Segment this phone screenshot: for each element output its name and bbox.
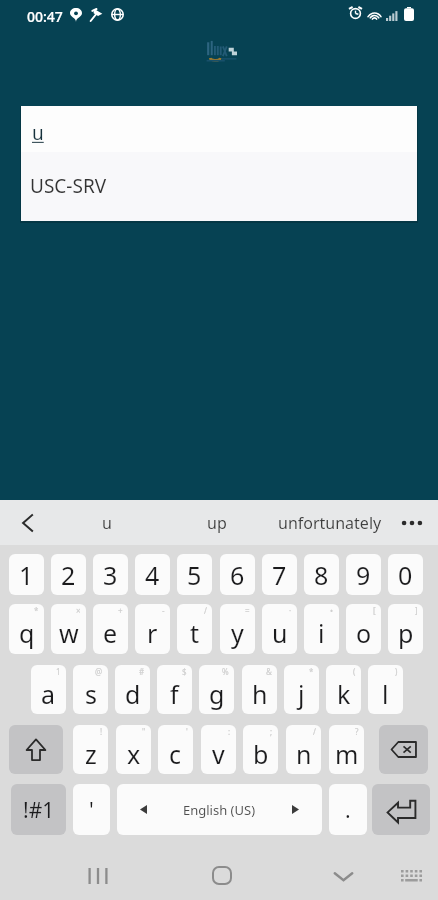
staticText: 3	[103, 558, 118, 592]
staticText: $	[182, 666, 187, 677]
button[interactable]: b	[243, 725, 278, 774]
button[interactable]: d	[115, 665, 150, 714]
staticText: '	[89, 796, 94, 825]
button[interactable]: USC-SRV	[21, 152, 417, 221]
button[interactable]: q	[9, 604, 44, 654]
button[interactable]: u	[52, 500, 162, 545]
button[interactable]: Shift	[9, 725, 63, 774]
staticText: 7	[272, 558, 287, 592]
button[interactable]: t	[177, 604, 212, 654]
button[interactable]: i	[304, 604, 339, 654]
button[interactable]: '	[73, 784, 110, 835]
staticText: .	[345, 796, 351, 825]
button[interactable]: e	[93, 604, 128, 654]
staticText: u	[32, 120, 44, 146]
staticText: 1	[19, 558, 34, 592]
staticText: x	[127, 737, 141, 771]
button[interactable]: r	[135, 604, 170, 654]
staticText: &	[266, 666, 272, 677]
staticText: t	[190, 616, 200, 650]
staticText: b	[253, 737, 269, 771]
staticText: m	[335, 737, 359, 771]
button[interactable]: 9	[346, 554, 381, 595]
staticText: o	[356, 616, 372, 650]
staticText: 9	[356, 558, 371, 592]
button[interactable]: a	[31, 665, 66, 714]
button[interactable]: .	[329, 784, 367, 835]
button[interactable]: x	[116, 725, 151, 774]
staticText: 00:47	[27, 7, 63, 26]
staticText: 2	[61, 558, 76, 592]
staticText: ×	[76, 605, 81, 616]
button[interactable]: o	[346, 604, 381, 654]
staticText: ·	[289, 605, 292, 616]
button[interactable]: Backspace	[379, 725, 428, 774]
button[interactable]: 6	[220, 554, 255, 595]
button[interactable]: Space	[117, 784, 322, 835]
staticText: d	[125, 677, 141, 711]
staticText: a	[41, 677, 56, 711]
staticText: 0	[398, 558, 413, 592]
staticText: (	[353, 666, 356, 677]
button[interactable]: f	[157, 665, 192, 714]
staticText: +	[118, 605, 123, 616]
button[interactable]: j	[284, 665, 319, 714]
button[interactable]: v	[201, 725, 236, 774]
button[interactable]: 2	[51, 554, 86, 595]
button[interactable]: Enter	[372, 784, 430, 835]
staticText: /	[313, 726, 316, 737]
button[interactable]: s	[73, 665, 108, 714]
button[interactable]: c	[158, 725, 193, 774]
staticText: 1	[56, 666, 61, 677]
staticText: =	[245, 605, 250, 616]
button[interactable]: Home	[195, 845, 245, 900]
button[interactable]: Hide keyboard	[318, 845, 368, 900]
staticText: 6	[230, 558, 245, 592]
button[interactable]: p	[388, 604, 423, 654]
staticText: y	[231, 616, 244, 650]
button[interactable]: u	[21, 106, 417, 152]
staticText: •	[330, 605, 334, 616]
staticText: i	[318, 616, 325, 650]
button[interactable]: h	[242, 665, 277, 714]
staticText: "	[142, 726, 146, 737]
button[interactable]: k	[326, 665, 361, 714]
button[interactable]: 7	[262, 554, 297, 595]
button[interactable]: up	[162, 500, 272, 545]
button[interactable]: 0	[388, 554, 423, 595]
staticText: 5	[187, 558, 202, 592]
staticText: !#1	[23, 796, 55, 825]
button[interactable]: Previous suggestions	[0, 500, 54, 545]
button[interactable]: 1	[9, 554, 44, 595]
staticText: l	[382, 677, 389, 711]
staticText: u	[272, 616, 288, 650]
button[interactable]: 4	[135, 554, 170, 595]
staticText: 4	[145, 558, 160, 592]
button[interactable]: z	[73, 725, 108, 774]
staticText: 8	[314, 558, 329, 592]
staticText: English (US)	[183, 801, 256, 819]
button[interactable]: y	[220, 604, 255, 654]
button[interactable]: !#1	[11, 784, 66, 835]
button[interactable]: Recent apps	[73, 845, 123, 900]
staticText: %	[222, 666, 229, 677]
button[interactable]: g	[199, 665, 234, 714]
button[interactable]: n	[286, 725, 321, 774]
button[interactable]: Change keyboard	[387, 845, 437, 900]
button[interactable]: unfortunately	[275, 500, 385, 545]
button[interactable]: u	[262, 604, 297, 654]
staticText: *	[309, 666, 314, 677]
button[interactable]: 8	[304, 554, 339, 595]
staticText: p	[398, 616, 414, 650]
staticText: unfortunately	[278, 512, 382, 534]
staticText: @	[95, 666, 103, 677]
staticText: [	[373, 605, 376, 616]
button[interactable]: 3	[93, 554, 128, 595]
button[interactable]: More options	[389, 500, 435, 545]
button[interactable]: m	[329, 725, 364, 774]
button[interactable]: 5	[177, 554, 212, 595]
staticText: )	[395, 666, 398, 677]
button[interactable]: w	[51, 604, 86, 654]
staticText: c	[169, 737, 182, 771]
button[interactable]: l	[368, 665, 403, 714]
